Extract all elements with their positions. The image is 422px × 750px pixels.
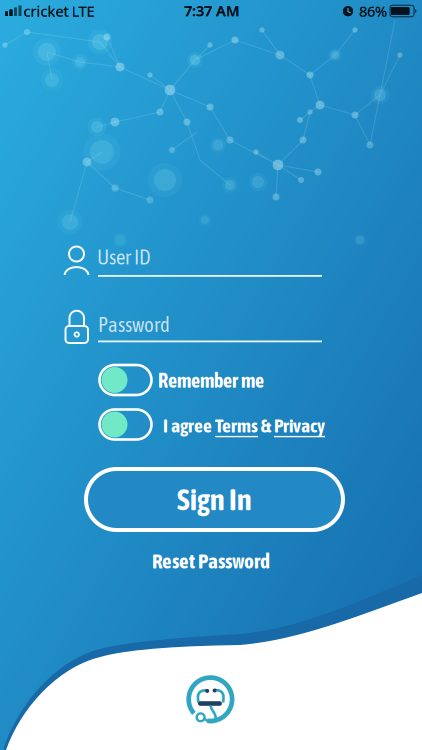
staticText: LTE <box>71 1 94 21</box>
staticText: Reset Password <box>152 549 270 573</box>
button[interactable]: Sign In <box>86 469 343 530</box>
button[interactable]: Privacy <box>274 414 325 437</box>
staticText: Sign In <box>177 482 252 517</box>
button[interactable]: Terms <box>215 414 258 437</box>
staticText: LTE <box>71 1 94 21</box>
button[interactable]: Remember me <box>99 365 151 395</box>
button[interactable]: Password <box>62 303 322 347</box>
staticText: Privacy <box>274 414 325 437</box>
staticText: 86% <box>359 1 387 21</box>
staticText: Remember me <box>158 369 264 392</box>
staticText: & <box>258 414 274 437</box>
staticText: User ID <box>97 245 151 269</box>
staticText: Terms <box>215 414 258 437</box>
staticText: cricket <box>23 1 68 21</box>
staticText: Password <box>98 313 170 336</box>
staticText: 7:37 AM <box>184 1 240 20</box>
button[interactable]: I agree Terms & Privacy <box>99 409 151 439</box>
staticText: 7:37 AM <box>184 1 240 20</box>
staticText: 86% <box>359 1 387 21</box>
button[interactable]: User ID <box>62 236 322 280</box>
staticText: I agree <box>163 414 215 437</box>
button[interactable]: Reset Password <box>152 549 270 573</box>
staticText: cricket <box>23 1 68 21</box>
